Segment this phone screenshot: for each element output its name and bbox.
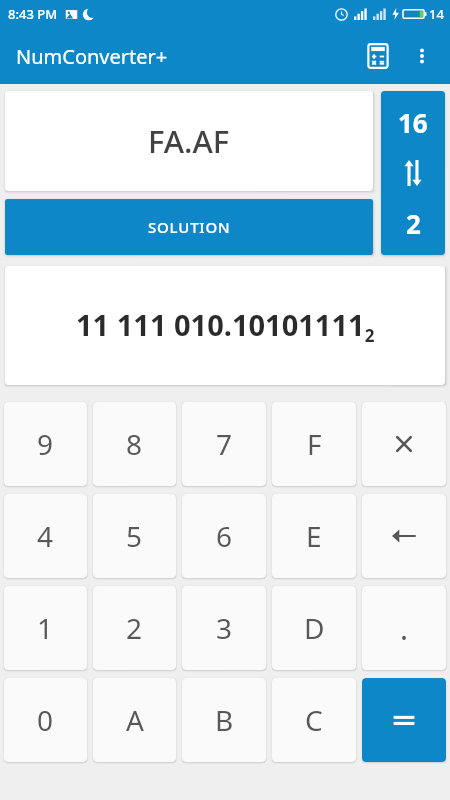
staticText: D (304, 609, 325, 647)
staticText: B (215, 701, 234, 739)
staticText: 5 (126, 517, 143, 555)
button[interactable]: Equals (362, 678, 446, 762)
staticText: 6 (216, 517, 233, 555)
staticText: 1 (37, 609, 54, 647)
staticText: 0 (37, 701, 54, 739)
staticText: A (126, 701, 144, 739)
button[interactable]: 6 (182, 494, 266, 578)
staticText: FA.AF (148, 120, 230, 162)
staticText: 7 (216, 425, 233, 463)
button[interactable]: 4 (4, 494, 87, 578)
button[interactable]: B (182, 678, 266, 762)
staticText: NumConverter+ (16, 43, 168, 70)
staticText: 11 111 010.101011112 (76, 305, 375, 347)
button[interactable]: SOLUTION (5, 199, 373, 255)
staticText: 16 (398, 105, 428, 140)
button[interactable]: E (272, 494, 356, 578)
staticText: SOLUTION (148, 217, 231, 237)
button[interactable]: C (272, 678, 356, 762)
button[interactable]: 7 (182, 402, 266, 486)
button[interactable]: More options (402, 36, 442, 76)
button[interactable]: D (272, 586, 356, 670)
staticText: 8 (126, 425, 143, 463)
button[interactable]: Backspace (362, 494, 446, 578)
button[interactable]: A (93, 678, 176, 762)
staticText: 2 (126, 609, 143, 647)
button[interactable]: 9 (4, 402, 87, 486)
staticText: 9 (37, 425, 54, 463)
button[interactable]: 2 (93, 586, 176, 670)
staticText: C (305, 701, 323, 739)
button[interactable]: F (272, 402, 356, 486)
button[interactable]: FA.AF (5, 91, 373, 191)
staticText: E (306, 517, 322, 555)
staticText: 2 (406, 206, 421, 241)
button[interactable]: 0 (4, 678, 87, 762)
button[interactable]: 1 (4, 586, 87, 670)
button[interactable]: 5 (93, 494, 176, 578)
staticText: 8:43 PM (8, 5, 58, 23)
button[interactable]: Calculator (358, 36, 398, 76)
button[interactable]: 16 (381, 91, 445, 255)
staticText: 4 (37, 517, 54, 555)
button[interactable]: 11 111 010.101011112 (5, 266, 445, 385)
staticText: 14 (429, 5, 444, 23)
button[interactable]: 3 (182, 586, 266, 670)
button[interactable]: 8 (93, 402, 176, 486)
staticText: 3 (216, 609, 233, 647)
staticText: . (400, 608, 409, 649)
button[interactable]: Multiply (362, 402, 446, 486)
staticText: F (307, 425, 322, 463)
button[interactable]: Decimal point (362, 586, 446, 670)
